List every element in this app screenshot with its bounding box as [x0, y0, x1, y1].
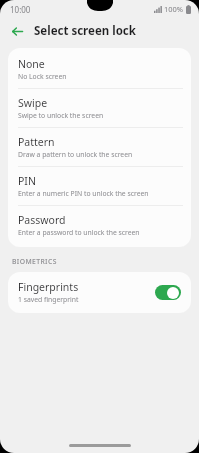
button[interactable]: None: [8, 48, 191, 88]
staticText: Pattern: [18, 135, 55, 149]
staticText: Swipe to unlock the screen: [18, 111, 104, 120]
staticText: 1 saved fingerprint: [18, 295, 79, 304]
button[interactable]: Fingerprints toggle: [155, 285, 181, 300]
staticText: Fingerprints: [18, 280, 79, 294]
button[interactable]: Fingerprints: [8, 272, 191, 313]
button[interactable]: PIN: [8, 167, 191, 205]
button[interactable]: Pattern: [8, 128, 191, 166]
staticText: Enter a password to unlock the screen: [18, 228, 140, 237]
staticText: 100%: [164, 4, 184, 14]
button[interactable]: Back: [6, 20, 28, 42]
staticText: BIOMETRICS: [12, 257, 57, 266]
staticText: Enter a numeric PIN to unlock the screen: [18, 189, 149, 198]
staticText: Password: [18, 213, 66, 227]
staticText: No Lock screen: [18, 72, 67, 81]
button[interactable]: Swipe: [8, 89, 191, 127]
staticText: 10:00: [10, 4, 31, 15]
button[interactable]: Password: [8, 206, 191, 247]
staticText: Select screen lock: [34, 23, 136, 39]
staticText: Swipe: [18, 96, 48, 110]
staticText: Draw a pattern to unlock the screen: [18, 150, 133, 159]
staticText: None: [18, 57, 45, 71]
staticText: PIN: [18, 174, 36, 188]
